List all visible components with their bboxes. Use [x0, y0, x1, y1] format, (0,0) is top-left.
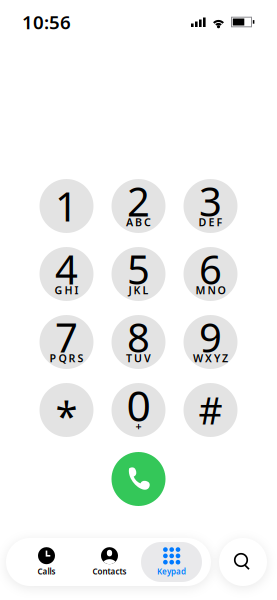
- button[interactable]: 0: [111, 383, 165, 437]
- staticText: W X Y Z: [193, 351, 228, 365]
- button[interactable]: Keypad: [141, 542, 202, 582]
- staticText: T U V: [126, 351, 151, 365]
- staticText: 9: [199, 310, 222, 363]
- button[interactable]: 2: [111, 179, 165, 233]
- staticText: M N O: [195, 283, 225, 297]
- staticText: +: [135, 419, 141, 433]
- button[interactable]: 3: [183, 179, 237, 233]
- staticText: #: [198, 385, 222, 435]
- button[interactable]: 8: [111, 315, 165, 369]
- button[interactable]: 9: [183, 315, 237, 369]
- staticText: 8: [127, 310, 150, 363]
- button[interactable]: Call: [111, 452, 165, 506]
- staticText: 6: [199, 242, 222, 295]
- staticText: Calls: [37, 566, 55, 577]
- button[interactable]: Calls: [15, 542, 78, 582]
- staticText: Contacts: [92, 566, 126, 577]
- staticText: 2: [127, 174, 150, 227]
- staticText: 1: [55, 179, 78, 232]
- staticText: 5: [127, 242, 150, 295]
- button[interactable]: 4: [39, 247, 93, 301]
- staticText: 7: [55, 310, 78, 363]
- staticText: *: [55, 388, 77, 441]
- staticText: A B C: [126, 215, 151, 229]
- staticText: 0: [126, 377, 150, 433]
- staticText: 3: [199, 174, 222, 227]
- button[interactable]: *: [39, 383, 93, 437]
- staticText: 4: [55, 242, 78, 295]
- button[interactable]: 7: [39, 315, 93, 369]
- button[interactable]: #: [183, 383, 237, 437]
- staticText: 10:56: [22, 10, 71, 34]
- button[interactable]: Search: [219, 538, 267, 586]
- staticText: Keypad: [157, 566, 186, 577]
- button[interactable]: 1: [39, 179, 93, 233]
- button[interactable]: 6: [183, 247, 237, 301]
- staticText: J K L: [128, 283, 148, 297]
- staticText: P Q R S: [49, 351, 83, 365]
- button[interactable]: 5: [111, 247, 165, 301]
- staticText: G H I: [54, 283, 78, 297]
- staticText: D E F: [198, 215, 222, 229]
- button[interactable]: Contacts: [78, 542, 141, 582]
